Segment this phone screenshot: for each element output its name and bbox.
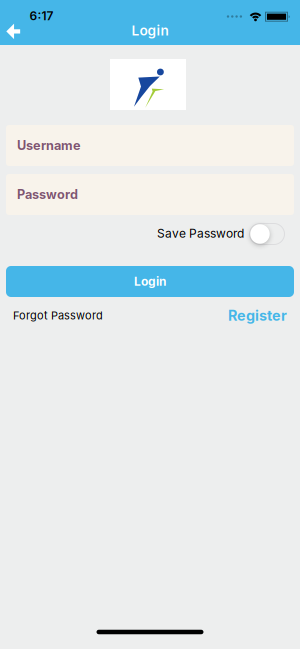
staticText: Login: [134, 274, 166, 289]
button[interactable]: Register: [228, 307, 287, 324]
staticText: Save Password: [157, 226, 244, 241]
button[interactable]: Back: [2, 19, 24, 43]
staticText: Login: [131, 22, 168, 39]
button[interactable]: Forgot Password: [13, 309, 103, 322]
staticText: Forgot Password: [13, 309, 103, 322]
button[interactable]: Login: [6, 266, 294, 297]
staticText: Register: [228, 307, 287, 324]
staticText: 6:17: [29, 9, 53, 23]
staticText: Username: [17, 138, 81, 153]
staticText: Password: [17, 187, 78, 202]
button[interactable]: Save Password: [249, 223, 284, 244]
